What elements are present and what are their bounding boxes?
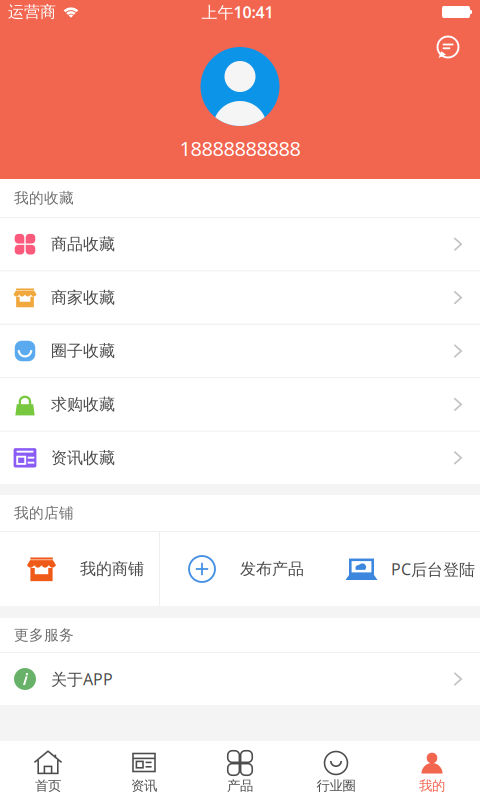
staticText: 运营商 [8,2,56,22]
staticText: 行业圈 [316,778,355,794]
button[interactable]: 求购收藏 [0,377,480,431]
button[interactable]: 首页 [0,741,96,800]
button[interactable]: 发布产品 [160,532,320,606]
button[interactable]: 资讯收藏 [0,431,480,484]
button[interactable]: 资讯 [96,741,192,800]
staticText: 上午10:41 [201,1,273,23]
button[interactable]: 圈子收藏 [0,324,480,377]
staticText: 关于APP [51,668,113,690]
button[interactable]: 行业圈 [288,741,384,800]
staticText: 我的收藏 [14,189,74,207]
button[interactable]: 关于APP [0,652,480,705]
staticText: 18888888888 [179,135,300,162]
button[interactable]: 产品 [192,741,288,800]
button[interactable]: 商家收藏 [0,270,480,324]
button[interactable]: Messages [426,25,470,69]
staticText: 商家收藏 [51,288,115,307]
staticText: 圈子收藏 [51,341,115,361]
staticText: 我的店铺 [14,504,74,522]
staticText: 资讯收藏 [51,448,115,468]
staticText: 我的 [419,778,445,794]
staticText: PC后台登陆 [391,558,475,580]
button[interactable]: PC后台登陆 [320,532,480,606]
staticText: 首页 [35,778,61,794]
staticText: 我的商铺 [80,559,144,579]
staticText: 商品收藏 [51,234,115,254]
staticText: 求购收藏 [51,395,115,414]
button[interactable]: 我的 [384,741,480,800]
button[interactable]: 商品收藏 [0,217,480,270]
button[interactable]: 我的商铺 [0,532,159,606]
staticText: 发布产品 [240,559,304,579]
staticText: 资讯 [131,778,157,794]
staticText: 产品 [227,778,253,794]
staticText: 更多服务 [14,626,74,644]
